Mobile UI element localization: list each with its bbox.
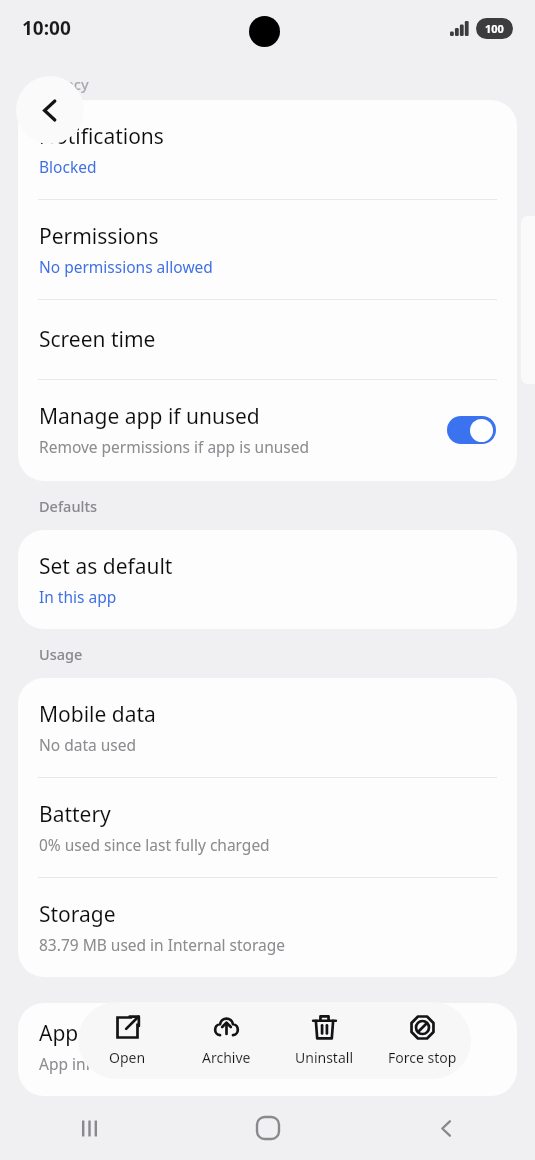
staticText: Force stop xyxy=(388,1048,457,1067)
staticText: Defaults xyxy=(39,496,97,516)
button[interactable]: App details xyxy=(18,1003,517,1096)
staticText: App info xyxy=(39,1053,101,1074)
button[interactable]: Back xyxy=(16,76,84,144)
staticText: Usage xyxy=(39,644,83,664)
staticText: Remove permissions if app is unused xyxy=(39,436,310,457)
button[interactable]: Screen time xyxy=(18,300,517,379)
button[interactable]: Back xyxy=(357,1096,535,1160)
button[interactable]: Permissions xyxy=(18,200,517,299)
staticText: Blocked xyxy=(39,156,97,177)
staticText: Archive xyxy=(202,1048,251,1067)
button[interactable]: Manage app if unused xyxy=(18,380,517,481)
button[interactable]: Storage xyxy=(18,878,517,977)
staticText: No data used xyxy=(39,734,137,755)
button[interactable]: Manage app if unused toggle xyxy=(447,416,496,444)
button[interactable]: Set as default xyxy=(18,530,517,629)
staticText: Open xyxy=(109,1048,146,1067)
button[interactable]: Recents xyxy=(0,1096,179,1160)
staticText: Manage app if unused xyxy=(39,402,260,431)
staticText: Uninstall xyxy=(295,1048,353,1067)
staticText: No permissions allowed xyxy=(39,256,213,277)
staticText: Set as default xyxy=(39,552,173,581)
staticText: Mobile data xyxy=(39,700,156,729)
staticText: Storage xyxy=(39,900,116,929)
staticText: Screen time xyxy=(39,325,156,354)
staticText: In this app xyxy=(39,586,117,607)
button[interactable]: Home xyxy=(179,1096,357,1160)
button[interactable]: Open xyxy=(78,1002,177,1079)
staticText: 10:00 xyxy=(22,15,71,41)
staticText: Permissions xyxy=(39,222,159,251)
staticText: 100 xyxy=(485,21,504,36)
button[interactable]: Notifications xyxy=(18,100,517,199)
staticText: Notifications xyxy=(39,122,164,151)
button[interactable]: Battery xyxy=(18,778,517,877)
button[interactable]: Force stop xyxy=(373,1002,471,1079)
staticText: Privacy xyxy=(39,74,89,94)
button[interactable]: Uninstall xyxy=(275,1002,373,1079)
button[interactable]: Archive xyxy=(177,1002,275,1079)
staticText: Battery xyxy=(39,800,111,829)
staticText: 83.79 MB used in Internal storage xyxy=(39,934,286,955)
button[interactable]: Mobile data xyxy=(18,678,517,777)
staticText: 0% used since last fully charged xyxy=(39,834,270,855)
staticText: App details xyxy=(39,1019,149,1048)
